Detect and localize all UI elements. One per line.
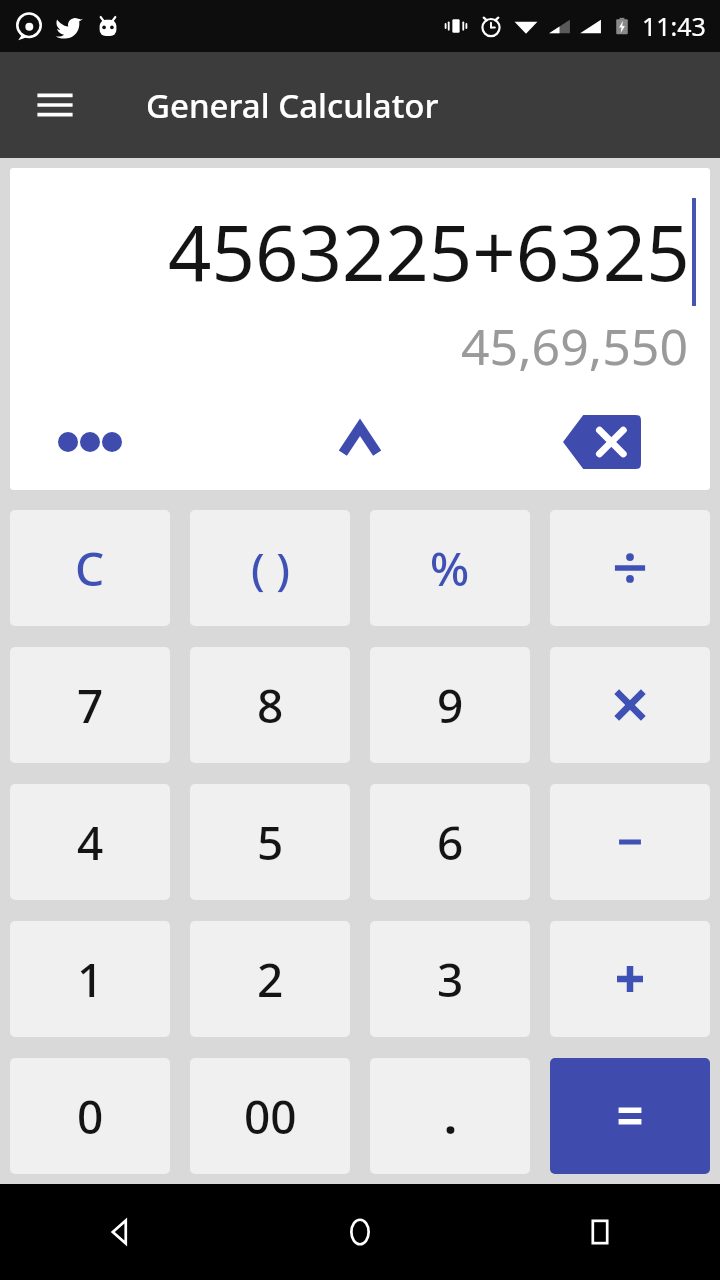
staticText: 1: [77, 948, 104, 1011]
button[interactable]: Back: [0, 1184, 240, 1280]
button[interactable]: Multiply: [550, 647, 710, 763]
button[interactable]: 9: [370, 647, 530, 763]
staticText: 4563225+6325: [168, 200, 690, 304]
staticText: 6: [437, 811, 464, 874]
staticText: ( ): [251, 538, 290, 598]
staticText: 5: [257, 811, 284, 874]
button[interactable]: ( ): [190, 510, 350, 626]
staticText: .: [444, 1085, 457, 1148]
staticText: General Calculator: [146, 83, 439, 128]
button[interactable]: 3: [370, 921, 530, 1037]
staticText: 4: [77, 811, 104, 874]
button[interactable]: Equals: [550, 1058, 710, 1174]
staticText: 7: [77, 674, 104, 737]
staticText: %: [430, 537, 470, 600]
button[interactable]: .: [370, 1058, 530, 1174]
button[interactable]: Subtract: [550, 784, 710, 900]
button[interactable]: Divide: [550, 510, 710, 626]
button[interactable]: 00: [190, 1058, 350, 1174]
staticText: 0: [77, 1085, 104, 1148]
button[interactable]: 2: [190, 921, 350, 1037]
staticText: 3: [437, 948, 464, 1011]
staticText: 45,69,550: [10, 312, 688, 380]
button[interactable]: Expand history: [312, 402, 408, 478]
staticText: 9: [437, 674, 464, 737]
button[interactable]: More options: [48, 407, 132, 477]
button[interactable]: 8: [190, 647, 350, 763]
button[interactable]: C: [10, 510, 170, 626]
button[interactable]: Backspace: [554, 404, 650, 480]
staticText: 2: [257, 948, 284, 1011]
button[interactable]: 7: [10, 647, 170, 763]
button[interactable]: 1: [10, 921, 170, 1037]
staticText: 8: [257, 674, 284, 737]
button[interactable]: Open navigation menu: [22, 72, 88, 138]
button[interactable]: 0: [10, 1058, 170, 1174]
button[interactable]: Add: [550, 921, 710, 1037]
button[interactable]: 6: [370, 784, 530, 900]
staticText: C: [75, 537, 105, 600]
staticText: 00: [244, 1085, 297, 1148]
button[interactable]: %: [370, 510, 530, 626]
staticText: 11:43: [642, 9, 706, 43]
button[interactable]: 5: [190, 784, 350, 900]
button[interactable]: Home: [240, 1184, 480, 1280]
button[interactable]: Recent apps: [480, 1184, 720, 1280]
button[interactable]: 4: [10, 784, 170, 900]
